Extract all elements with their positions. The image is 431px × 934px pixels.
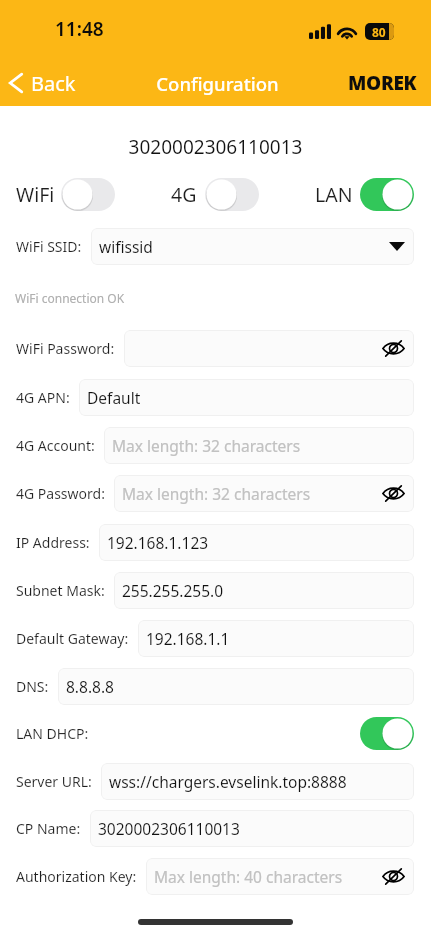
staticText: 80 bbox=[372, 24, 386, 40]
staticText: wifissid bbox=[99, 236, 153, 257]
staticText: Default bbox=[87, 387, 141, 408]
staticText: 192.168.1.123 bbox=[107, 532, 209, 553]
staticText: Default Gateway: bbox=[16, 629, 129, 648]
button[interactable]: Max length: 32 characters bbox=[104, 427, 414, 464]
staticText: wss://chargers.evselink.top:8888 bbox=[109, 771, 347, 792]
staticText: 192.168.1.1 bbox=[146, 628, 230, 649]
staticText: 11:48 bbox=[55, 16, 104, 42]
button[interactable]: WiFi toggle bbox=[61, 178, 115, 211]
button[interactable]: wifissid bbox=[91, 228, 414, 265]
button[interactable]: 8.8.8.8 bbox=[58, 668, 414, 705]
staticText: LAN DHCP: bbox=[16, 724, 89, 743]
staticText: Max length: 32 characters bbox=[112, 435, 301, 456]
staticText: 4G APN: bbox=[16, 388, 70, 407]
staticText: WiFi Password: bbox=[16, 339, 115, 358]
button[interactable]: 192.168.1.1 bbox=[138, 620, 414, 657]
staticText: DNS: bbox=[16, 677, 49, 696]
staticText: WiFi bbox=[16, 181, 55, 208]
staticText: 3020002306110013 bbox=[0, 134, 431, 160]
button[interactable]: 4G toggle bbox=[205, 178, 259, 211]
staticText: Back bbox=[31, 70, 76, 97]
staticText: Configuration bbox=[2, 71, 431, 96]
staticText: Max length: 40 characters bbox=[154, 866, 343, 887]
button[interactable]: Default bbox=[79, 379, 414, 416]
staticText: 3020002306110013 bbox=[98, 818, 240, 839]
button[interactable]: LAN toggle bbox=[360, 178, 414, 211]
staticText: 4G Account: bbox=[16, 436, 95, 455]
staticText: 8.8.8.8 bbox=[66, 676, 114, 697]
button[interactable]: 3020002306110013 bbox=[90, 810, 414, 847]
staticText: CP Name: bbox=[16, 819, 81, 838]
staticText: Subnet Mask: bbox=[16, 581, 105, 600]
staticText: WiFi connection OK bbox=[15, 290, 125, 306]
staticText: 255.255.255.0 bbox=[122, 580, 224, 601]
staticText: MOREK bbox=[348, 70, 417, 92]
button[interactable]: LAN DHCP toggle bbox=[360, 717, 414, 750]
other: Expand bbox=[389, 242, 405, 251]
button[interactable]: Max length: 32 characters bbox=[114, 475, 414, 512]
button[interactable]: wss://chargers.evselink.top:8888 bbox=[101, 763, 414, 800]
button[interactable]: Show password bbox=[378, 475, 414, 512]
button[interactable]: Back bbox=[7, 66, 76, 100]
staticText: 4G Password: bbox=[16, 484, 105, 503]
button[interactable]: Show password bbox=[378, 858, 414, 895]
button[interactable]: 192.168.1.123 bbox=[99, 524, 414, 561]
staticText: 4G bbox=[171, 181, 197, 208]
button[interactable]: Show password bbox=[124, 330, 414, 367]
staticText: Max length: 32 characters bbox=[122, 483, 311, 504]
staticText: WiFi SSID: bbox=[16, 237, 82, 256]
staticText: Server URL: bbox=[16, 772, 92, 791]
button[interactable]: 255.255.255.0 bbox=[114, 572, 414, 609]
other: Back bbox=[7, 73, 25, 93]
other: Morek logo bbox=[348, 70, 417, 92]
staticText: LAN bbox=[315, 181, 353, 208]
staticText: Authorization Key: bbox=[16, 867, 137, 886]
staticText: IP Address: bbox=[16, 533, 90, 552]
button[interactable]: Show password bbox=[378, 330, 414, 367]
button[interactable]: Max length: 40 characters bbox=[146, 858, 414, 895]
